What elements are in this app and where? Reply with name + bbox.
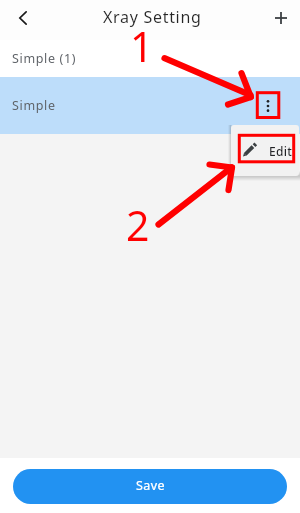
button[interactable]: Edit <box>231 125 299 176</box>
button[interactable]: More options <box>256 92 280 120</box>
button[interactable]: Simple (1) <box>0 40 300 77</box>
staticText: Simple (1) <box>12 50 77 67</box>
button[interactable]: Save <box>13 469 287 504</box>
staticText: Save <box>136 477 165 494</box>
staticText: Edit <box>269 143 293 159</box>
button[interactable]: Add <box>262 0 300 40</box>
staticText: 1 <box>130 18 154 74</box>
staticText: Xray Setting <box>103 6 202 28</box>
staticText: 2 <box>126 197 150 253</box>
button[interactable]: Simple <box>0 77 300 134</box>
staticText: Simple <box>12 97 56 114</box>
button[interactable]: Back <box>5 0 41 38</box>
